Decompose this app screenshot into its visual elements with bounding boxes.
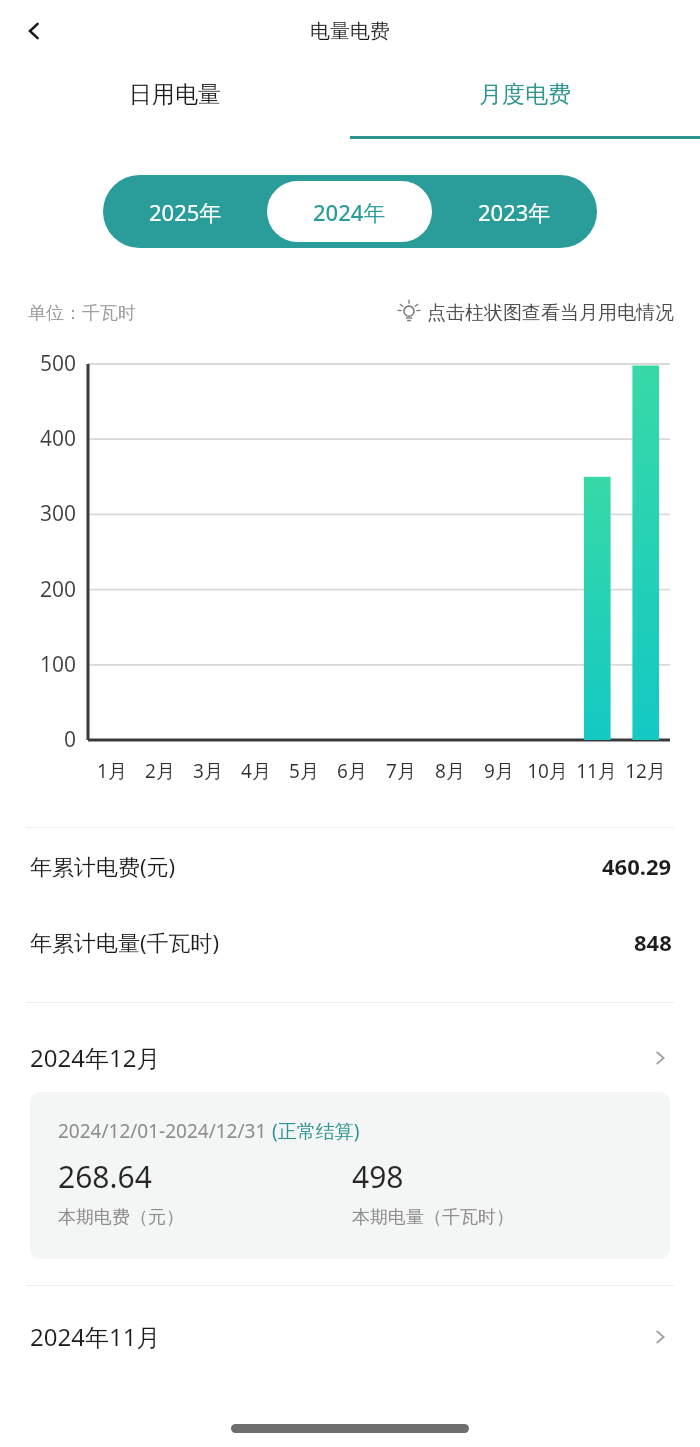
button[interactable]: Back — [10, 7, 58, 55]
staticText: 本期电量（千瓦时） — [352, 1206, 514, 1229]
button[interactable]: 月度电费 — [350, 62, 700, 146]
staticText: 268.64 — [58, 1156, 152, 1197]
button[interactable]: 2023年 — [432, 175, 597, 248]
staticText: 848 — [634, 927, 672, 957]
staticText: 400 — [0, 424, 76, 453]
staticText: 100 — [0, 650, 76, 679]
staticText: 300 — [0, 499, 76, 528]
staticText: 12月 — [625, 758, 666, 784]
staticText: 单位：千瓦时 — [28, 302, 136, 325]
staticText: 500 — [0, 349, 76, 378]
staticText: 8月 — [435, 758, 465, 784]
staticText: 日用电量 — [129, 80, 221, 109]
staticText: 电量电费 — [310, 19, 390, 44]
button[interactable]: 年累计电费(元) — [0, 828, 700, 904]
staticText: 年累计电量(千瓦时) — [30, 927, 220, 957]
staticText: 6月 — [337, 758, 367, 784]
button[interactable]: 2024年 — [267, 181, 432, 242]
staticText: 2月 — [145, 758, 175, 784]
staticText: 3月 — [193, 758, 223, 784]
staticText: 本期电费（元） — [58, 1206, 184, 1229]
staticText: 2023年 — [478, 197, 551, 227]
button[interactable]: 2024年11月 — [0, 1314, 700, 1359]
staticText: 200 — [0, 575, 76, 604]
staticText: 498 — [352, 1156, 404, 1197]
staticText: 0 — [0, 725, 76, 754]
staticText: 月度电费 — [479, 80, 571, 109]
staticText: 7月 — [386, 758, 416, 784]
staticText: 11月 — [576, 758, 617, 784]
staticText: 2024年11月 — [30, 1320, 161, 1353]
button[interactable]: 日用电量 — [0, 62, 350, 146]
staticText: 1月 — [97, 758, 127, 784]
button[interactable]: 2025年 — [103, 175, 267, 248]
staticText: 2025年 — [149, 197, 222, 227]
staticText: 4月 — [241, 758, 271, 784]
staticText: 10月 — [527, 758, 568, 784]
button[interactable]: 年累计电量(千瓦时) — [0, 904, 700, 980]
staticText: 2024/12/01-2024/12/31 — [58, 1118, 272, 1144]
staticText: 5月 — [289, 758, 319, 784]
staticText: 点击柱状图查看当月用电情况 — [427, 301, 674, 325]
button[interactable]: 2024/12/01-2024/12/31 — [30, 1092, 670, 1259]
staticText: 460.29 — [602, 851, 672, 881]
button[interactable]: 2024年12月 — [0, 1035, 700, 1080]
staticText: 年累计电费(元) — [30, 851, 176, 881]
staticText: 2024年12月 — [30, 1041, 161, 1074]
staticText: (正常结算) — [272, 1118, 360, 1144]
staticText: 2024年 — [313, 197, 386, 227]
staticText: 9月 — [484, 758, 514, 784]
